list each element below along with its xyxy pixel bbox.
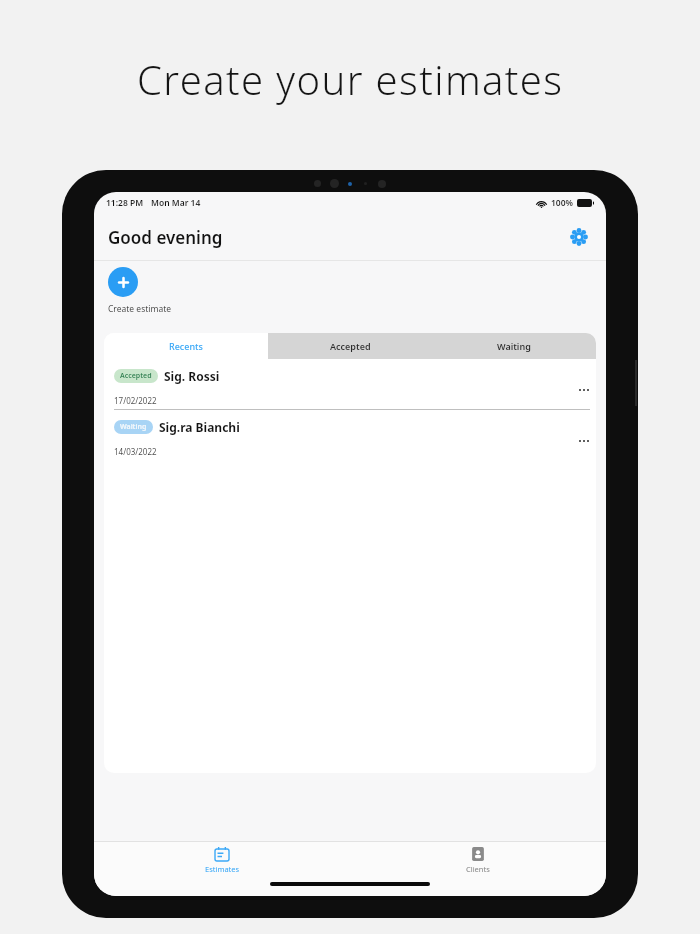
staticText: 11:28 PM bbox=[106, 197, 144, 209]
staticText: Create estimate bbox=[108, 303, 172, 315]
staticText: 100% bbox=[551, 197, 574, 209]
button[interactable]: Estimates bbox=[94, 842, 350, 874]
staticText: 17/02/2022 bbox=[114, 395, 157, 406]
button[interactable]: More options bbox=[572, 378, 596, 402]
staticText: Accepted bbox=[330, 340, 371, 352]
staticText: Sig. Rossi bbox=[164, 368, 220, 384]
button[interactable]: Waiting bbox=[104, 410, 596, 460]
staticText: Clients bbox=[466, 864, 490, 874]
button[interactable]: More options bbox=[572, 429, 596, 453]
staticText: Waiting bbox=[497, 340, 531, 352]
staticText: Sig.ra Bianchi bbox=[159, 419, 240, 435]
button[interactable]: Settings bbox=[566, 224, 592, 250]
button[interactable]: Accepted bbox=[104, 359, 596, 410]
staticText: Recents bbox=[169, 340, 203, 352]
staticText: Create your estimates bbox=[137, 52, 564, 106]
button[interactable]: Recents bbox=[104, 333, 268, 359]
staticText: Accepted bbox=[120, 371, 152, 381]
button[interactable]: Waiting bbox=[432, 333, 596, 359]
staticText: Mon Mar 14 bbox=[151, 197, 201, 209]
staticText: Estimates bbox=[205, 864, 240, 874]
button[interactable]: Clients bbox=[350, 842, 606, 874]
button[interactable]: Accepted bbox=[268, 333, 432, 359]
staticText: 14/03/2022 bbox=[114, 446, 157, 457]
staticText: Waiting bbox=[120, 422, 147, 432]
button[interactable]: Create estimate bbox=[108, 267, 172, 315]
staticText: Good evening bbox=[108, 226, 223, 249]
